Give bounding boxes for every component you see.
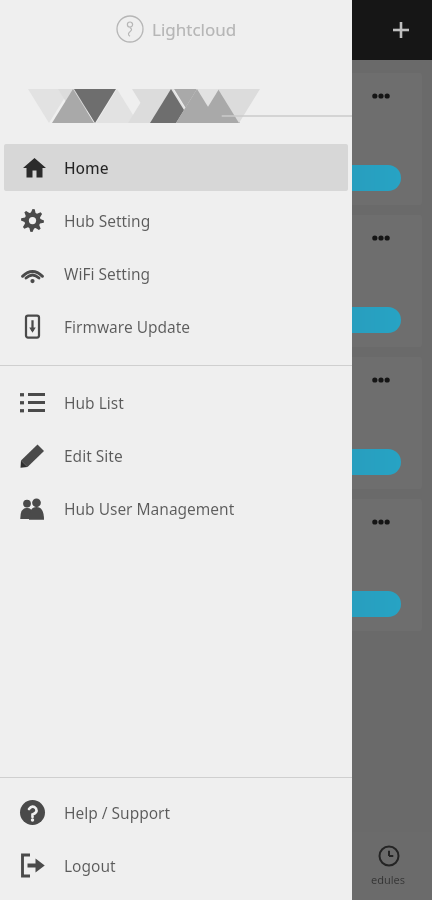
- button[interactable]: Edit Site: [0, 429, 352, 482]
- staticText: Home: [64, 157, 109, 178]
- button[interactable]: Hub Setting: [0, 194, 352, 247]
- staticText: edules: [371, 872, 406, 887]
- staticText: Hub List: [64, 392, 124, 413]
- staticText: Firmware Update: [64, 316, 191, 337]
- button[interactable]: edules: [371, 845, 406, 887]
- button[interactable]: WiFi Setting: [0, 247, 352, 300]
- button[interactable]: More options: [366, 223, 396, 253]
- button[interactable]: Logout: [0, 839, 352, 892]
- staticText: Help / Support: [64, 802, 171, 823]
- staticText: Lightcloud: [152, 18, 237, 41]
- button[interactable]: More options: [10, 499, 422, 631]
- button[interactable]: Home: [4, 144, 348, 191]
- button[interactable]: Help / Support: [0, 786, 352, 839]
- button[interactable]: Hub List: [0, 376, 352, 429]
- button[interactable]: More options: [366, 365, 396, 395]
- button[interactable]: Firmware Update: [0, 300, 352, 353]
- button[interactable]: Hub User Management: [0, 482, 352, 535]
- staticText: Hub User Management: [64, 498, 235, 519]
- staticText: WiFi Setting: [64, 263, 151, 284]
- staticText: Logout: [64, 855, 116, 876]
- button[interactable]: More options: [366, 81, 396, 111]
- button[interactable]: More options: [10, 73, 422, 205]
- button[interactable]: More options: [366, 507, 396, 537]
- button[interactable]: More options: [10, 215, 422, 347]
- staticText: Hub Setting: [64, 210, 151, 231]
- staticText: Edit Site: [64, 445, 123, 466]
- button[interactable]: More options: [10, 357, 422, 489]
- button[interactable]: Add: [384, 13, 418, 47]
